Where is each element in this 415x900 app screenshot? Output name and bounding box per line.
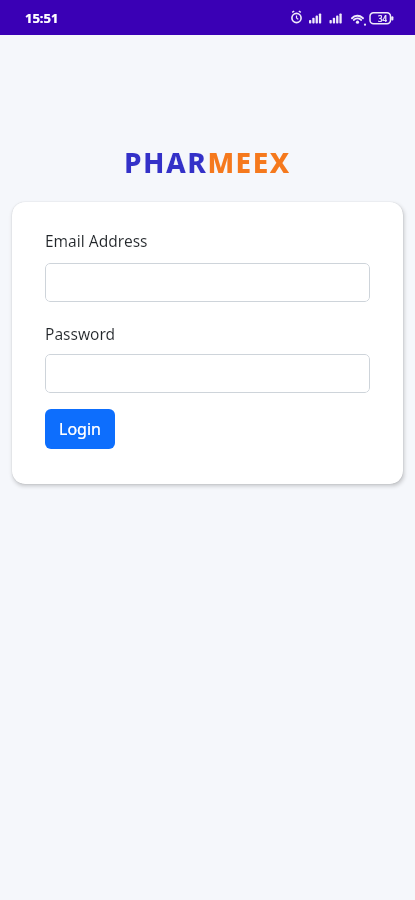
staticText: 34: [378, 13, 388, 24]
staticText: Password: [45, 323, 116, 344]
button[interactable]: Login: [45, 409, 115, 449]
button[interactable]: [45, 263, 370, 302]
staticText: Email Address: [45, 230, 148, 251]
staticText: 15:51: [25, 9, 59, 27]
staticText: PHARMEEX: [124, 143, 291, 181]
button[interactable]: [45, 354, 370, 393]
staticText: Login: [59, 418, 101, 440]
